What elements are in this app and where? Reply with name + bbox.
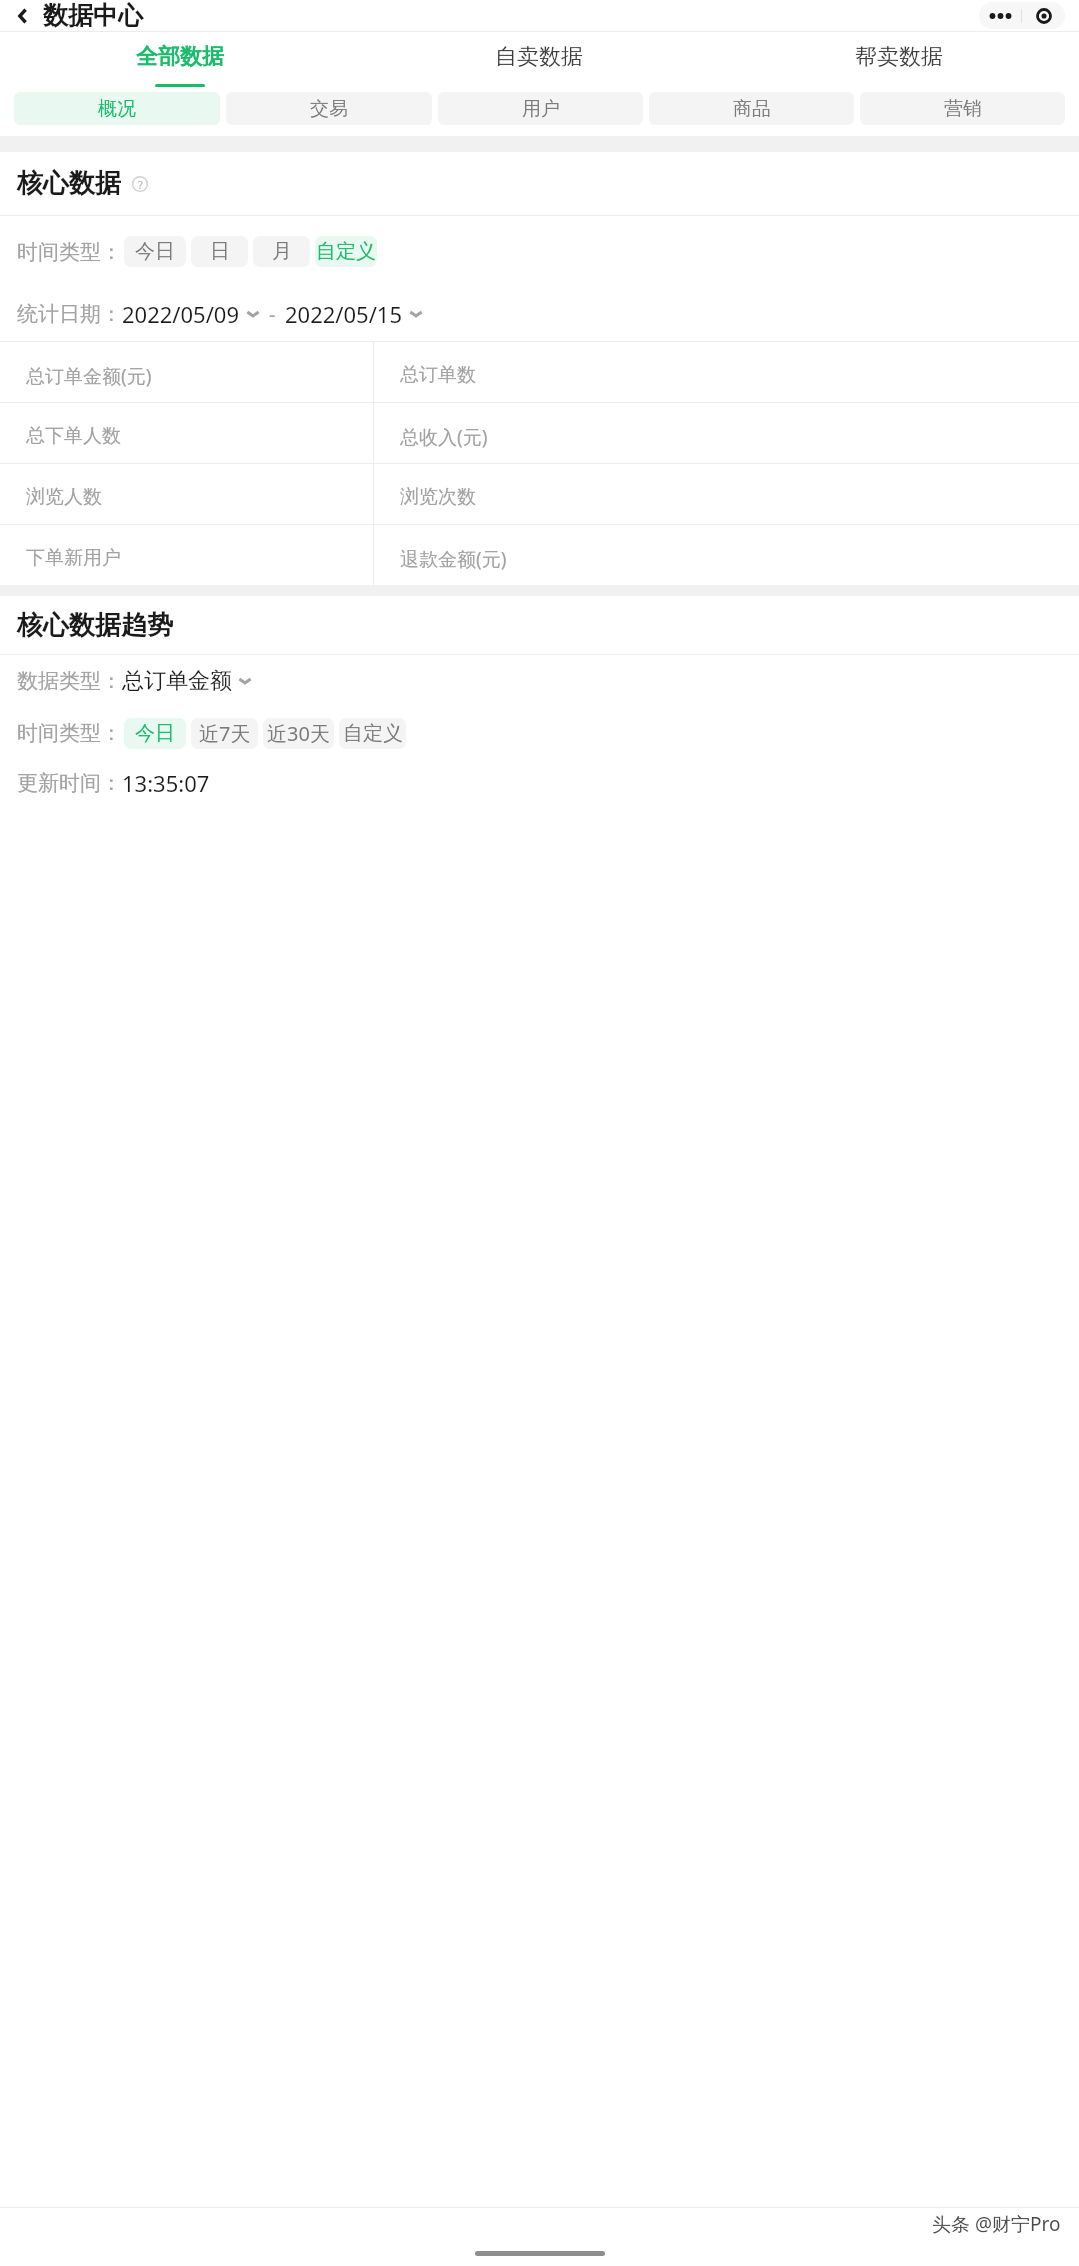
staticText: 自定义 xyxy=(343,721,403,746)
staticText: 时间类型： xyxy=(17,239,122,265)
button[interactable]: 近30天 xyxy=(263,718,334,749)
button[interactable]: 今日 xyxy=(124,236,186,267)
staticText: 日 xyxy=(210,239,230,264)
staticText: 浏览人数 xyxy=(26,485,102,509)
staticText: 头条 @财宁Pro xyxy=(932,2211,1061,2237)
staticText: 统计日期： xyxy=(17,301,122,327)
staticText: 退款金额(元) xyxy=(400,546,507,572)
button[interactable]: 浏览人数 xyxy=(0,464,373,524)
staticText: 2022/05/15 xyxy=(285,299,403,329)
staticText: 帮卖数据 xyxy=(855,43,943,71)
staticText: 近7天 xyxy=(199,720,251,747)
staticText: 总订单金额 xyxy=(122,667,232,695)
button[interactable]: 2022/05/09 xyxy=(122,299,260,329)
staticText: 今日 xyxy=(135,239,175,264)
button[interactable]: 总订单数 xyxy=(374,342,1079,402)
button[interactable]: 自定义 xyxy=(339,718,406,749)
staticText: 总订单数 xyxy=(400,363,476,387)
button[interactable]: 近7天 xyxy=(191,718,258,749)
staticText: 自卖数据 xyxy=(495,43,583,71)
button[interactable]: 全部数据 xyxy=(0,32,359,87)
button[interactable]: Help xyxy=(132,176,148,192)
button[interactable]: 总订单金额 xyxy=(122,667,252,695)
button[interactable]: 交易 xyxy=(226,92,432,125)
button[interactable]: 总下单人数 xyxy=(0,403,373,463)
staticText: 商品 xyxy=(733,97,771,121)
button[interactable]: Close xyxy=(1022,2,1065,29)
staticText: 更新时间： xyxy=(17,770,122,796)
button[interactable]: 概况 xyxy=(14,92,220,125)
button[interactable]: 营销 xyxy=(860,92,1065,125)
staticText: 概况 xyxy=(98,97,136,121)
button[interactable]: 退款金额(元) xyxy=(374,525,1079,585)
staticText: 总下单人数 xyxy=(26,424,121,448)
button[interactable]: 浏览次数 xyxy=(374,464,1079,524)
staticText: 总订单金额(元) xyxy=(26,363,152,389)
staticText: ? xyxy=(138,177,143,192)
staticText: 时间类型： xyxy=(17,720,122,746)
staticText: 核心数据趋势 xyxy=(17,609,173,642)
staticText: 下单新用户 xyxy=(26,546,121,570)
staticText: 数据类型： xyxy=(17,668,122,694)
staticText: 交易 xyxy=(310,97,348,121)
staticText: 近30天 xyxy=(267,720,330,747)
staticText: 2022/05/09 xyxy=(122,299,240,329)
staticText: 总收入(元) xyxy=(400,424,488,450)
staticText: 13:35:07 xyxy=(122,768,210,798)
button[interactable]: 月 xyxy=(253,236,310,267)
button[interactable]: More options xyxy=(979,2,1021,29)
staticText: 浏览次数 xyxy=(400,485,476,509)
button[interactable]: 商品 xyxy=(649,92,854,125)
staticText: - xyxy=(269,301,276,328)
button[interactable]: 总订单金额(元) xyxy=(0,342,373,402)
button[interactable]: 下单新用户 xyxy=(0,525,373,585)
button[interactable]: 日 xyxy=(191,236,248,267)
button[interactable]: Back xyxy=(10,3,36,29)
staticText: 全部数据 xyxy=(136,43,224,71)
staticText: 今日 xyxy=(135,721,175,746)
staticText: 自定义 xyxy=(316,239,376,264)
button[interactable]: 今日 xyxy=(124,718,186,749)
staticText: 核心数据 xyxy=(17,167,121,200)
button[interactable]: 总收入(元) xyxy=(374,403,1079,463)
button[interactable]: 2022/05/15 xyxy=(285,299,423,329)
button[interactable]: 帮卖数据 xyxy=(719,32,1079,87)
button[interactable]: 自定义 xyxy=(315,236,377,267)
button[interactable]: 用户 xyxy=(438,92,643,125)
staticText: 用户 xyxy=(522,97,560,121)
staticText: 月 xyxy=(272,239,292,264)
button[interactable]: 自卖数据 xyxy=(359,32,719,87)
staticText: 营销 xyxy=(944,97,982,121)
staticText: 数据中心 xyxy=(43,0,143,31)
